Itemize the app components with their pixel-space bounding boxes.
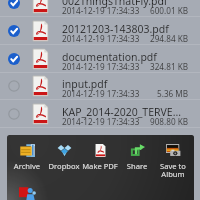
staticText: 600.01 KB [150,5,189,16]
button[interactable]: Make PDF [79,135,121,177]
button[interactable]: Save to Album [152,135,194,177]
staticText: 908.80 KB [150,116,189,127]
button[interactable]: Dropbox [43,135,85,177]
button[interactable]: Open in [19,185,37,200]
staticText: input.pdf [62,77,182,91]
staticText: Dropbox [43,161,85,171]
button[interactable]: 002ThingsThatFly.pdf [0,0,200,17]
staticText: 2014-12-19 17:34:33 [62,61,140,72]
staticText: 002ThingsThatFly.pdf [62,0,182,8]
staticText: 20121203-143803.pdf [62,22,182,36]
staticText: 2014-12-19 17:34:33 [62,33,140,44]
staticText: documentation.pdf [62,50,182,64]
button[interactable]: input.pdf [0,72,200,100]
staticText: 2014-12-19 17:34:33 [62,5,140,16]
button[interactable]: 20121203-143803.pdf [0,17,200,45]
staticText: 294.84 KB [150,33,189,44]
staticText: Save to Album [152,161,194,180]
staticText: 324.81 KB [150,61,189,72]
button[interactable]: Share [116,135,158,177]
staticText: KAP_2014-2020_TERVEZ… [62,105,182,119]
button[interactable]: KAP_2014-2020_TERVEZ… [0,100,200,128]
button[interactable]: documentation.pdf [0,45,200,73]
staticText: 2014-12-19 17:34:33 [62,88,140,99]
staticText: Archive [7,161,48,171]
staticText: Make PDF [79,161,121,171]
staticText: Share [116,161,158,171]
button[interactable]: Archive [7,135,48,177]
staticText: 5.36 MB [157,88,189,99]
staticText: 2014-12-19 17:34:33 [62,116,140,127]
